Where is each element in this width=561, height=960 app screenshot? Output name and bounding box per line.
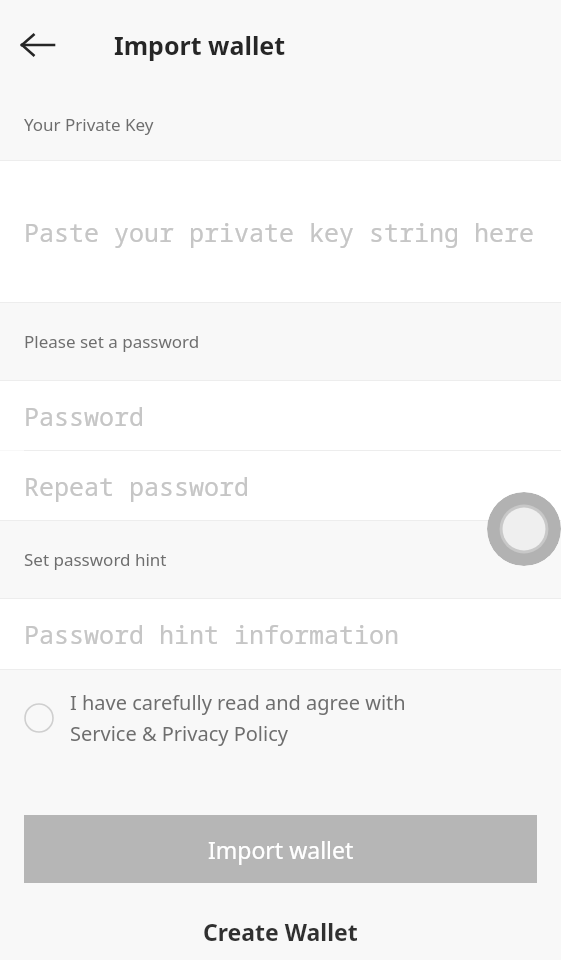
button[interactable]: Password bbox=[0, 381, 561, 450]
staticText: Your Private Key bbox=[24, 113, 154, 136]
button[interactable]: Paste your private key string here bbox=[0, 161, 561, 302]
staticText: I have carefully read and agree with Ser… bbox=[70, 689, 406, 746]
staticText: Password hint information (optional) bbox=[24, 617, 559, 651]
staticText: Please set a password bbox=[24, 330, 200, 353]
button[interactable]: Repeat password bbox=[0, 451, 561, 520]
button[interactable]: Password hint information (optional) bbox=[0, 599, 561, 669]
staticText: Paste your private key string here bbox=[24, 215, 535, 249]
staticText: Repeat password bbox=[24, 469, 250, 503]
button[interactable]: Create Wallet bbox=[0, 916, 561, 956]
button[interactable]: I have carefully read and agree with Ser… bbox=[0, 670, 561, 765]
button[interactable]: Import wallet bbox=[24, 815, 537, 883]
button[interactable]: Assistive menu bbox=[487, 492, 561, 566]
staticText: Password bbox=[24, 399, 145, 433]
staticText: Import wallet bbox=[114, 28, 286, 62]
staticText: Create Wallet bbox=[203, 916, 358, 947]
button[interactable]: Back bbox=[14, 28, 62, 62]
staticText: Import wallet bbox=[208, 834, 354, 865]
staticText: Set password hint bbox=[24, 548, 167, 571]
